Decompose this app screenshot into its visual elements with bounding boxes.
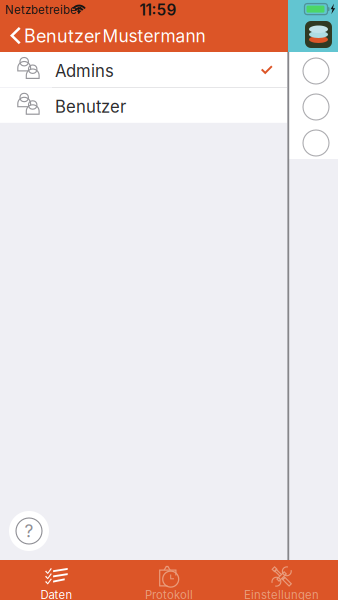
staticText: Netzbetreiber (5, 3, 81, 17)
button[interactable]: Benutzer (0, 88, 288, 123)
staticText: Benutzer (55, 97, 126, 117)
staticText: 11:59 (139, 1, 176, 19)
staticText: Mustermann (102, 25, 205, 46)
button[interactable]: Einstellungen (225, 560, 338, 600)
button[interactable]: Benutzer (0, 20, 92, 52)
button[interactable]: Daten (0, 560, 113, 600)
staticText: Protokoll (145, 588, 193, 600)
staticText: Admins (55, 61, 114, 81)
staticText: ? (24, 520, 33, 541)
button[interactable]: Hilfe (9, 511, 49, 551)
button[interactable]: Protokoll (113, 560, 225, 600)
staticText: Daten (40, 588, 72, 600)
button[interactable]: Admins (0, 52, 288, 87)
staticText: Benutzer (24, 25, 101, 47)
staticText: Einstellungen (244, 588, 319, 600)
